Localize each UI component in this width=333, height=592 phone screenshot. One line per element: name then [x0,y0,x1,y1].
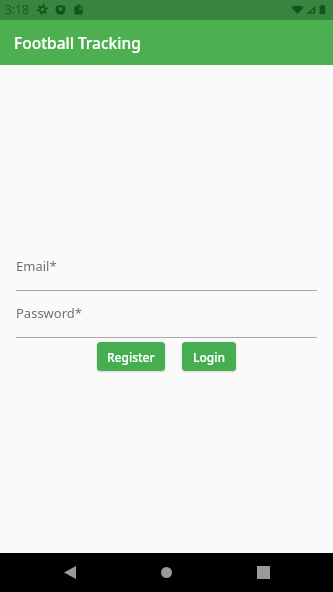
button[interactable]: Password* [16,304,317,338]
button[interactable]: Home [142,553,191,592]
staticText: Email* [16,257,57,275]
button[interactable]: Back [45,553,94,592]
button[interactable]: Recent apps [239,553,288,592]
button[interactable]: Register [97,342,165,371]
staticText: Football Tracking [14,32,141,53]
button[interactable]: Email* [16,257,317,291]
staticText: Register [107,349,155,365]
staticText: Login [193,349,225,365]
button[interactable]: Login [182,342,236,371]
staticText: Password* [16,304,82,322]
staticText: 3:18 [5,1,29,17]
